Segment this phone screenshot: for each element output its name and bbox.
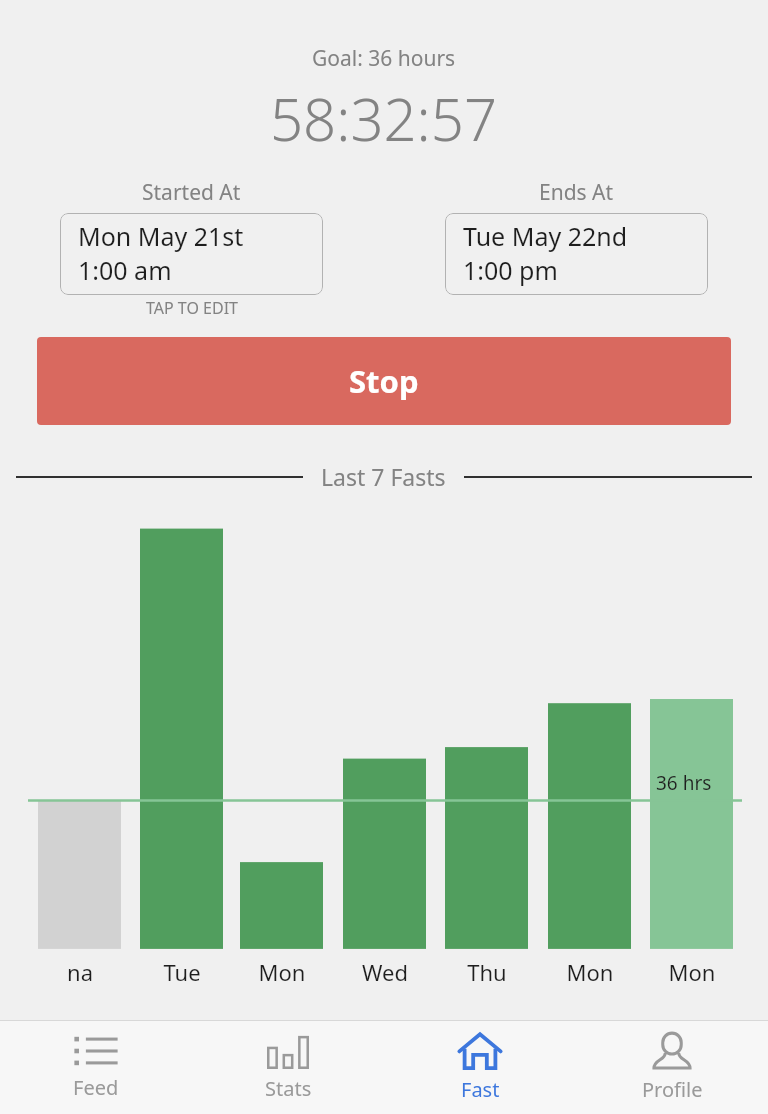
staticText: 1:00 am	[78, 253, 172, 287]
staticText: TAP TO EDIT	[146, 297, 238, 319]
button[interactable]: Fast	[384, 1026, 576, 1109]
staticText: Mon	[227, 957, 337, 987]
staticText: Goal: 36 hours	[312, 44, 456, 73]
staticText: Profile	[642, 1076, 703, 1103]
staticText: na	[25, 957, 135, 987]
staticText: Stats	[265, 1075, 312, 1102]
staticText: Thu	[432, 957, 542, 987]
staticText: Stop	[349, 360, 419, 402]
staticText: 36 hrs	[656, 770, 712, 796]
button[interactable]: Mon May 21st	[60, 213, 323, 295]
staticText: Feed	[73, 1074, 119, 1101]
button[interactable]: Stop	[37, 337, 731, 425]
staticText: 1:00 pm	[463, 253, 558, 287]
button[interactable]: Feed	[0, 1028, 192, 1107]
staticText: 58:32:57	[270, 79, 498, 158]
staticText: Started At	[142, 178, 241, 207]
staticText: Mon	[637, 957, 747, 987]
staticText: Tue May 22nd	[463, 219, 628, 253]
staticText: Last 7 Fasts	[321, 461, 446, 492]
staticText: Mon	[535, 957, 645, 987]
button[interactable]: Stats	[192, 1027, 384, 1108]
staticText: Tue	[127, 957, 237, 987]
button[interactable]: Tue May 22nd	[445, 213, 708, 295]
staticText: Fast	[461, 1076, 500, 1103]
staticText: Ends At	[539, 178, 614, 207]
staticText: Wed	[330, 957, 440, 987]
staticText: Mon May 21st	[78, 219, 244, 253]
button[interactable]: Profile	[576, 1026, 768, 1109]
